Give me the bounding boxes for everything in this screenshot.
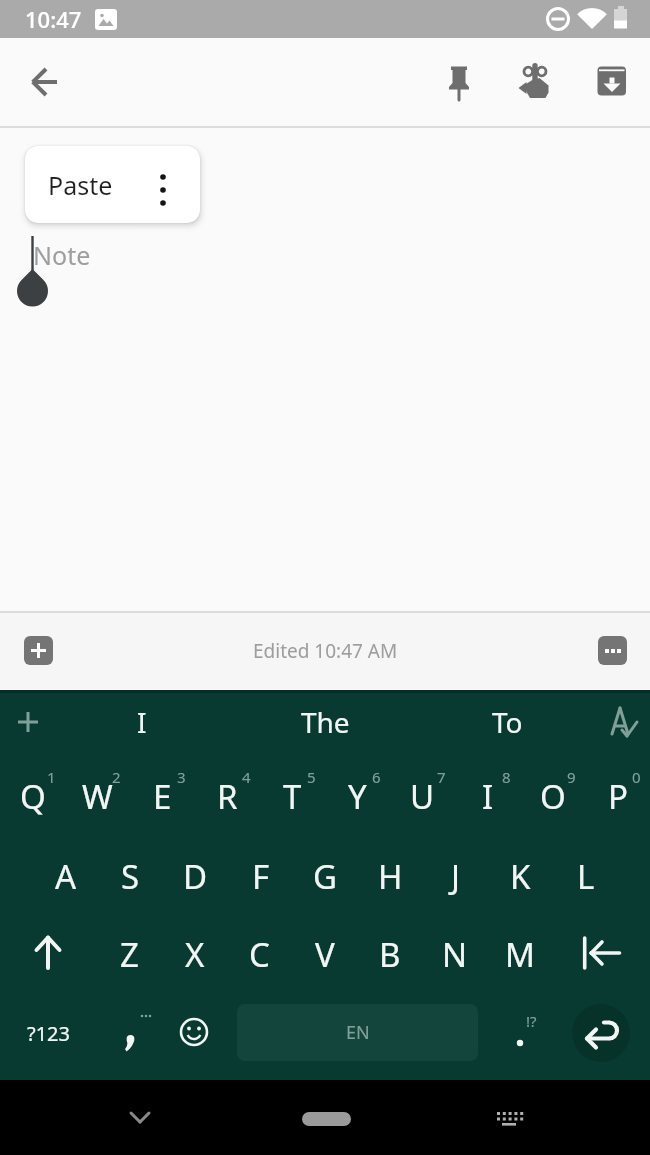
button[interactable]: U (390, 757, 455, 835)
staticText: I (482, 774, 494, 819)
button[interactable]: C (227, 915, 292, 993)
button[interactable]: I (82, 692, 202, 752)
button[interactable]: P (585, 757, 650, 835)
staticText: 3 (177, 767, 186, 787)
staticText: The (301, 703, 350, 741)
staticText: E (153, 774, 172, 819)
staticText: C (249, 932, 270, 977)
staticText: G (313, 854, 338, 899)
button[interactable]: F (228, 837, 293, 915)
staticText: EN (346, 1020, 370, 1045)
staticText: W (82, 774, 113, 819)
button[interactable]: G (293, 837, 358, 915)
button[interactable] (162, 995, 226, 1071)
staticText: 6 (372, 767, 381, 787)
button[interactable]: ?123 (3, 995, 93, 1071)
staticText: N (442, 932, 468, 977)
staticText: I (137, 703, 147, 741)
button[interactable]: T (260, 757, 325, 835)
button[interactable]: K (488, 837, 553, 915)
staticText: L (577, 854, 595, 899)
staticText: V (315, 932, 335, 977)
staticText: To (492, 703, 523, 741)
button[interactable]: Z (97, 915, 162, 993)
button[interactable]: S (98, 837, 163, 915)
button[interactable]: W (65, 757, 130, 835)
staticText: 0 (632, 767, 641, 787)
button[interactable] (10, 915, 88, 993)
staticText: A (55, 854, 77, 899)
button[interactable] (598, 696, 646, 748)
button[interactable] (435, 58, 483, 106)
staticText: 2 (112, 767, 121, 787)
staticText: J (451, 854, 461, 899)
staticText: ?123 (27, 1020, 70, 1047)
staticText: Paste (48, 168, 113, 202)
button[interactable]: V (292, 915, 357, 993)
button[interactable]: H (358, 837, 423, 915)
button[interactable] (302, 1112, 351, 1126)
staticText: X (185, 932, 205, 977)
button[interactable] (572, 1004, 630, 1062)
button[interactable]: Y (325, 757, 390, 835)
button[interactable] (587, 58, 635, 106)
staticText: 4 (242, 767, 251, 787)
staticText: M (505, 932, 535, 977)
button[interactable]: O (520, 757, 585, 835)
staticText: S (121, 854, 140, 899)
button[interactable] (20, 58, 68, 106)
button[interactable] (511, 58, 559, 106)
button[interactable] (488, 995, 552, 1071)
staticText: !? (526, 1011, 537, 1031)
staticText: 7 (437, 767, 446, 787)
button[interactable]: L (553, 837, 618, 915)
button[interactable] (110, 1087, 170, 1147)
staticText: O (540, 774, 566, 819)
staticText: Q (20, 774, 46, 819)
button[interactable]: E (130, 757, 195, 835)
button[interactable]: J (423, 837, 488, 915)
staticText: R (217, 774, 238, 819)
staticText: 5 (307, 767, 316, 787)
button[interactable] (598, 636, 627, 665)
button[interactable] (25, 146, 200, 223)
button[interactable]: D (163, 837, 228, 915)
staticText: P (608, 774, 628, 819)
button[interactable]: N (422, 915, 487, 993)
staticText: H (378, 854, 403, 899)
button[interactable]: The (250, 692, 400, 752)
button[interactable] (97, 995, 161, 1071)
staticText: D (183, 854, 208, 899)
staticText: Z (120, 932, 139, 977)
button[interactable]: EN (237, 1004, 478, 1061)
button[interactable]: B (357, 915, 422, 993)
staticText: B (379, 932, 401, 977)
staticText: 9 (567, 767, 576, 787)
button[interactable] (479, 1087, 539, 1147)
staticText: T (283, 774, 302, 819)
button[interactable]: R (195, 757, 260, 835)
staticText: K (510, 854, 531, 899)
staticText: 10:47 (25, 4, 82, 34)
staticText: F (252, 854, 270, 899)
button[interactable]: M (487, 915, 552, 993)
staticText: 1 (47, 767, 56, 787)
button[interactable]: To (432, 692, 582, 752)
staticText: U (410, 774, 435, 819)
button[interactable]: Q (0, 757, 65, 835)
button[interactable] (24, 636, 53, 665)
staticText: Y (348, 774, 367, 819)
button[interactable] (562, 915, 640, 993)
button[interactable]: X (162, 915, 227, 993)
button[interactable] (6, 696, 50, 748)
staticText: Edited 10:47 AM (253, 638, 398, 664)
button[interactable]: I (455, 757, 520, 835)
button[interactable]: A (33, 837, 98, 915)
staticText: Note (33, 238, 91, 270)
staticText: 8 (502, 767, 511, 787)
